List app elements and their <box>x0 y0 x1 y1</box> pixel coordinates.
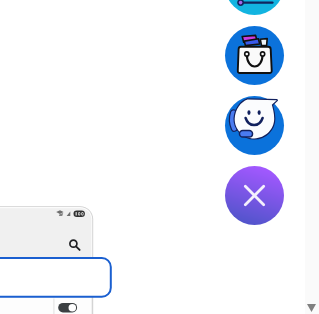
button[interactable]: Shop <box>225 26 284 85</box>
button[interactable]: Scroll down <box>307 304 316 312</box>
button[interactable]: Close <box>225 166 284 225</box>
button[interactable]: Customer service <box>225 96 284 155</box>
button[interactable]: Adjust settings <box>225 0 284 15</box>
